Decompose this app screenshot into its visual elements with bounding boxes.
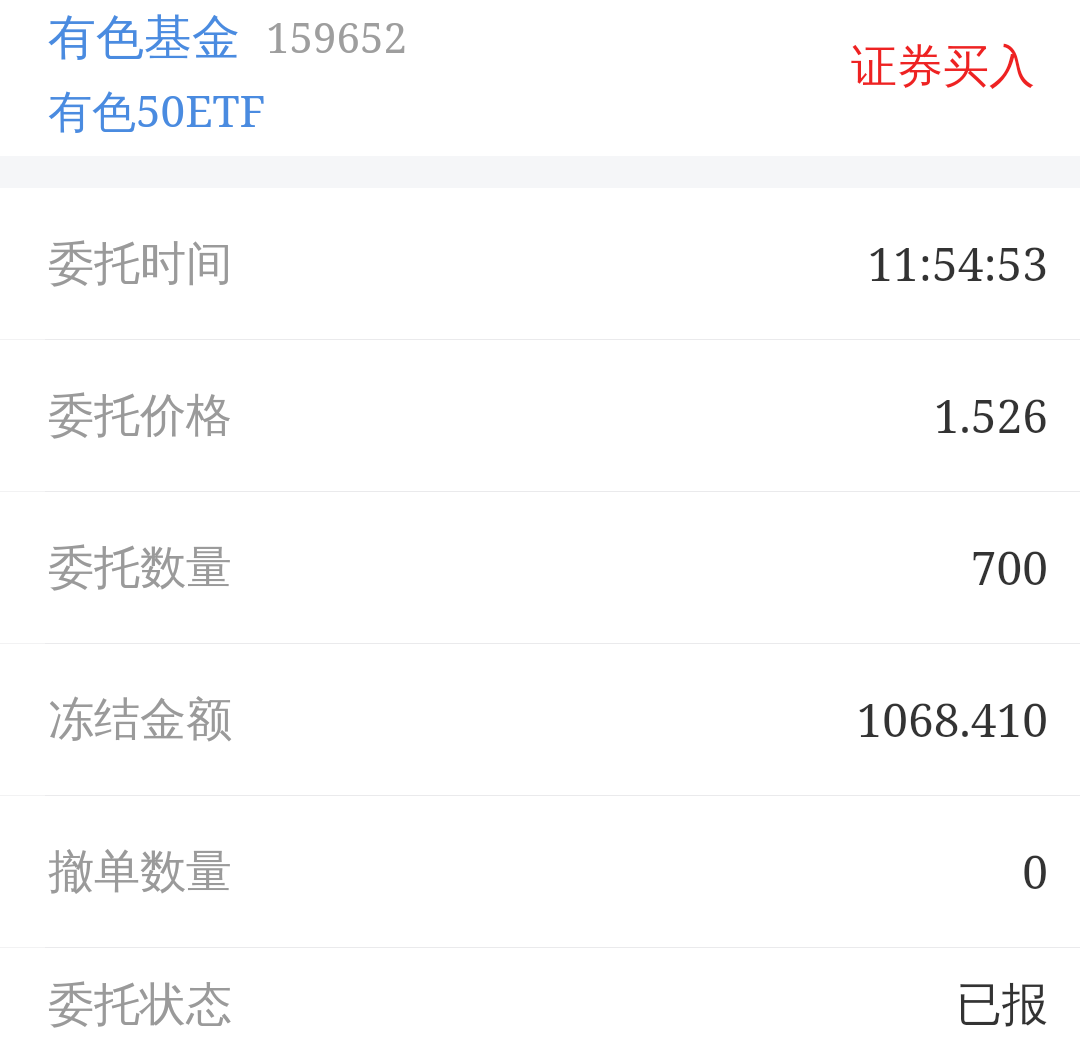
button[interactable]: 证券买入	[851, 38, 1035, 96]
staticText: 11:54:53	[867, 232, 1048, 295]
staticText: 有色50ETF	[48, 80, 266, 140]
button[interactable]: 委托价格	[0, 340, 1080, 491]
staticText: 0	[1022, 840, 1048, 903]
staticText: 撤单数量	[48, 843, 232, 901]
button[interactable]: 委托状态	[0, 948, 1080, 1061]
button[interactable]: 冻结金额	[0, 644, 1080, 795]
staticText: 700	[970, 536, 1048, 599]
button[interactable]: 委托数量	[0, 492, 1080, 643]
button[interactable]: 有色基金	[48, 8, 407, 140]
staticText: 冻结金额	[48, 691, 232, 749]
staticText: 有色基金	[48, 8, 240, 68]
staticText: 1068.410	[856, 688, 1048, 751]
staticText: 已报	[956, 976, 1048, 1034]
staticText: 1.526	[933, 384, 1048, 447]
button[interactable]: 撤单数量	[0, 796, 1080, 947]
button[interactable]: 委托时间	[0, 188, 1080, 339]
staticText: 委托状态	[48, 976, 232, 1034]
staticText: 证券买入	[851, 38, 1035, 96]
staticText: 委托数量	[48, 539, 232, 597]
staticText: 159652	[266, 8, 407, 65]
staticText: 委托价格	[48, 387, 232, 445]
staticText: 委托时间	[48, 235, 232, 293]
